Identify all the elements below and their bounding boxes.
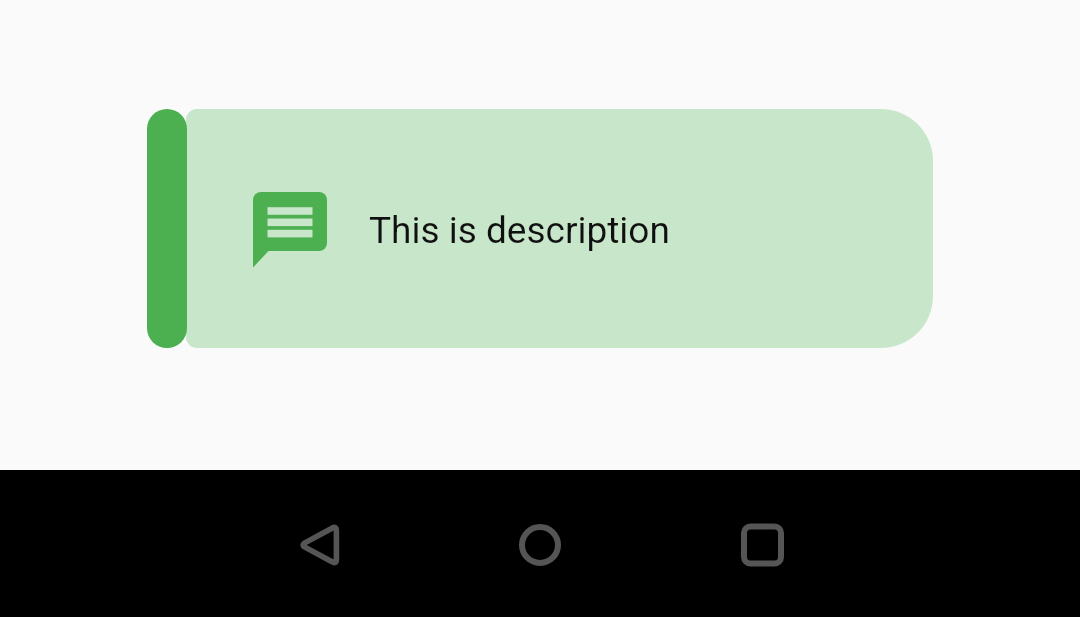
button[interactable]: Recent apps [652,470,872,617]
button[interactable]: Home [428,470,652,617]
button[interactable]: Back [212,470,428,617]
button[interactable]: This is description [147,109,933,348]
staticText: This is description [369,209,670,252]
